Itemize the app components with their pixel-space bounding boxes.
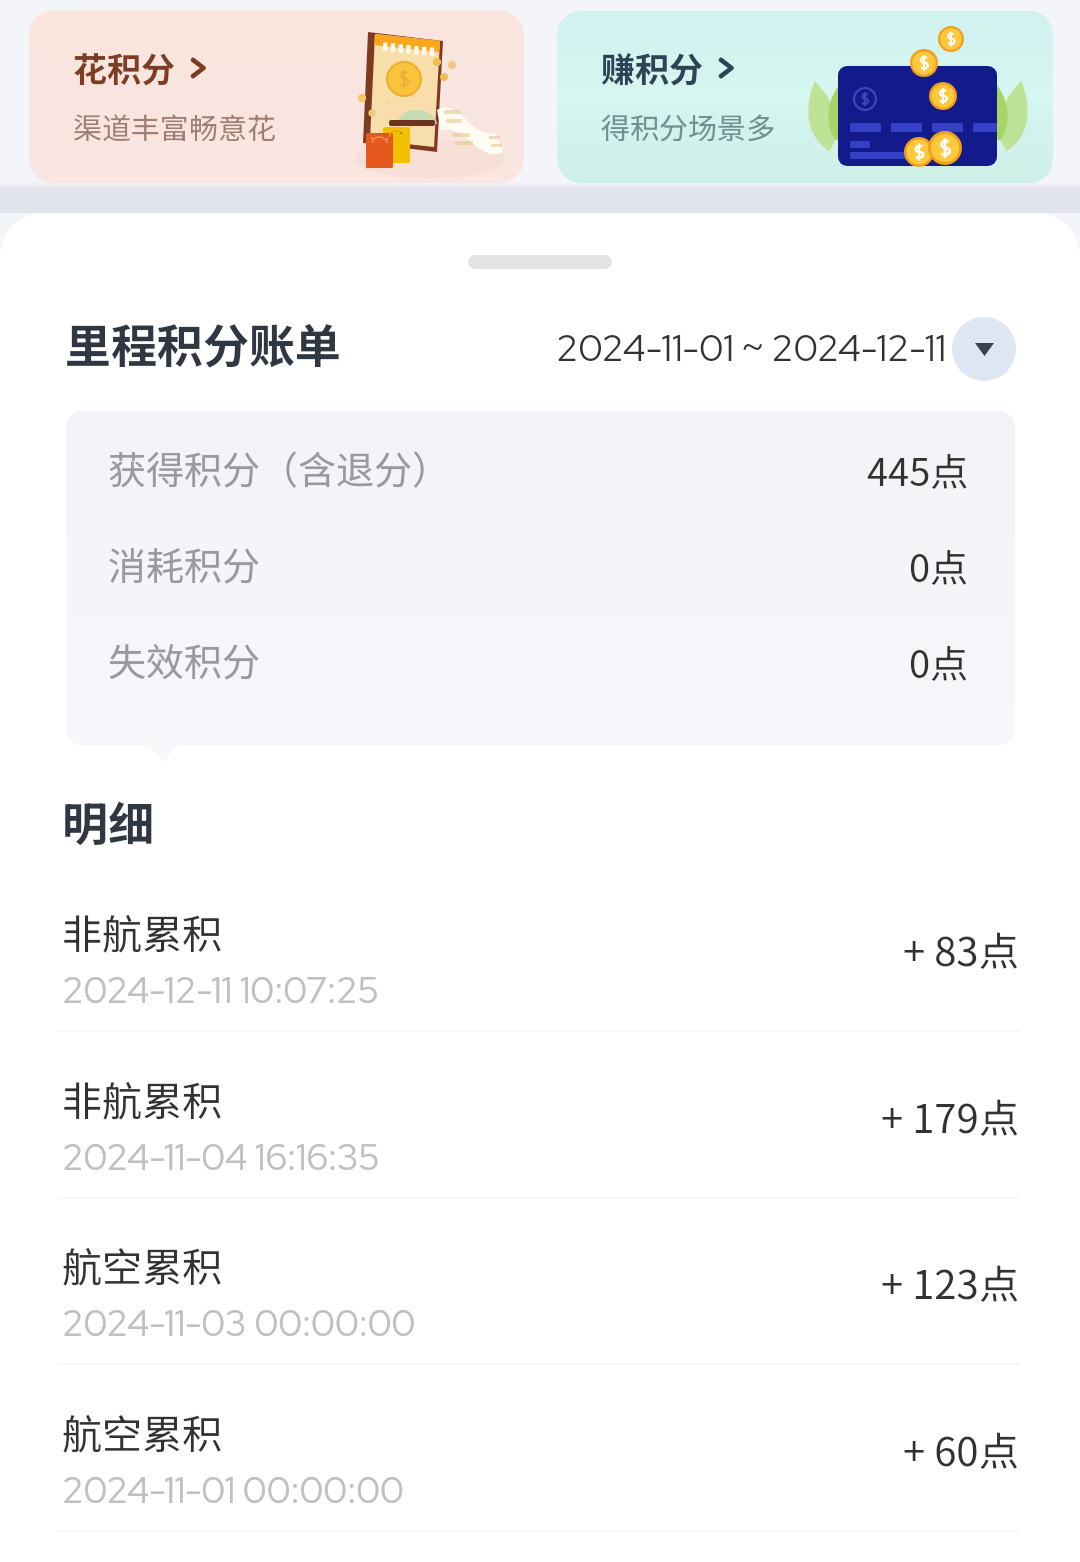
staticText: 445点 — [867, 442, 969, 497]
button[interactable]: 航空累积 — [0, 1236, 1080, 1402]
button[interactable]: 2024-11-01 ~ 2024-12-11 — [556, 315, 1016, 379]
staticText: 得积分场景多 — [601, 105, 776, 147]
staticText: 航空累积 — [62, 1236, 222, 1294]
staticText: 非航累积 — [62, 903, 222, 961]
staticText: 非航累积 — [62, 1070, 222, 1128]
staticText: 里程积分账单 — [65, 310, 341, 377]
staticText: 2024-11-01 ~ 2024-12-11 — [556, 323, 947, 372]
staticText: 2024-12-11 10:07:25 — [62, 966, 380, 1014]
staticText: 获得积分（含退分） — [108, 440, 451, 495]
staticText: 航空累积 — [62, 1403, 222, 1461]
other: Select date range — [952, 317, 1016, 381]
staticText: 0点 — [909, 634, 969, 689]
staticText: 2024-11-03 00:00:00 — [62, 1299, 416, 1347]
staticText: 赚积分 — [601, 43, 703, 92]
button[interactable]: 花积分 — [29, 11, 524, 183]
staticText: + 123点 — [881, 1253, 1019, 1311]
staticText: + 83点 — [903, 920, 1019, 978]
staticText: 2024-11-01 00:00:00 — [62, 1466, 404, 1514]
staticText: 失效积分 — [108, 632, 261, 687]
button[interactable]: 航空累积 — [0, 1403, 1080, 1562]
button[interactable]: 赚积分 — [557, 11, 1053, 183]
staticText: + 179点 — [881, 1087, 1019, 1145]
staticText: 渠道丰富畅意花 — [73, 105, 277, 147]
button[interactable]: 非航累积 — [0, 1070, 1080, 1236]
staticText: 2024-11-04 16:16:35 — [62, 1133, 380, 1181]
staticText: + 60点 — [903, 1420, 1019, 1478]
staticText: 0点 — [909, 538, 969, 593]
staticText: 花积分 — [73, 43, 175, 92]
staticText: 消耗积分 — [108, 536, 261, 591]
button[interactable]: 非航累积 — [0, 903, 1080, 1069]
staticText: 明细 — [62, 788, 154, 855]
